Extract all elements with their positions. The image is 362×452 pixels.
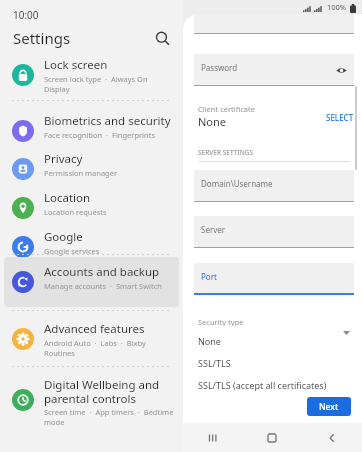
staticText: SELECT (326, 112, 354, 123)
staticText: Next (319, 401, 339, 413)
staticText: Advanced features (44, 321, 145, 337)
button[interactable]: Port (194, 263, 354, 295)
button[interactable]: Lock screen (4, 50, 179, 100)
button[interactable]: SSL/TLS (190, 352, 323, 374)
staticText: Google services (44, 246, 100, 256)
staticText: Accounts and backup (44, 264, 160, 280)
button[interactable]: Biometrics and security (4, 106, 179, 156)
staticText: SSL/TLS (198, 357, 231, 369)
button[interactable]: Google (4, 222, 179, 272)
staticText: Password (201, 62, 238, 73)
staticText: 100% (327, 2, 347, 12)
staticText: Client certificate (198, 104, 255, 114)
button[interactable]: Show password (334, 63, 348, 77)
button[interactable]: Digital Wellbeing and parental controls (4, 370, 179, 430)
button[interactable]: SELECT (323, 108, 357, 126)
button[interactable]: Privacy (4, 144, 179, 194)
staticText: Port (201, 271, 217, 282)
staticText: Biometrics and security (44, 113, 171, 129)
staticText: Privacy (44, 151, 83, 167)
button[interactable]: Advanced features (4, 314, 179, 364)
staticText: Security type (198, 317, 244, 327)
staticText: Google (44, 229, 83, 245)
button[interactable]: Next (307, 397, 351, 416)
staticText: None (198, 335, 221, 347)
button[interactable]: Password (194, 54, 354, 86)
button[interactable]: Server (194, 216, 354, 248)
button[interactable]: Settings (0, 21, 183, 55)
button[interactable]: Search (147, 23, 177, 53)
staticText: SERVER SETTINGS (198, 148, 253, 157)
staticText: 10:00 (13, 8, 39, 22)
staticText: Screen lock type · Always On Display (44, 74, 174, 94)
button[interactable]: SSL/TLS (accept all certificates) (190, 374, 323, 396)
button[interactable] (194, 14, 354, 34)
button[interactable]: Domain\Username (194, 170, 354, 202)
staticText: Screen time · App timers · Bedtime mode (44, 407, 174, 427)
staticText: Android Auto · Labs · Bixby Routines (44, 338, 174, 358)
staticText: None (198, 114, 227, 129)
staticText: Manage accounts · Smart Switch (44, 281, 162, 291)
staticText: Face recognition · Fingerprints (44, 130, 155, 140)
staticText: Lock screen (44, 57, 108, 73)
button[interactable]: Home (242, 423, 302, 452)
staticText: Permission manager (44, 168, 118, 178)
staticText: Server (201, 224, 226, 235)
staticText: Location requests (44, 207, 107, 217)
button[interactable]: Location (4, 183, 179, 233)
button[interactable]: None (190, 330, 323, 352)
staticText: Location (44, 190, 91, 206)
button[interactable]: Back (302, 423, 362, 452)
staticText: Domain\Username (201, 178, 273, 189)
button[interactable]: Recents (183, 423, 242, 452)
staticText: Settings (13, 28, 71, 48)
button[interactable]: Accounts and backup (4, 257, 179, 307)
staticText: SSL/TLS (accept all certificates) (198, 379, 327, 391)
staticText: Digital Wellbeing and parental controls (44, 377, 174, 406)
